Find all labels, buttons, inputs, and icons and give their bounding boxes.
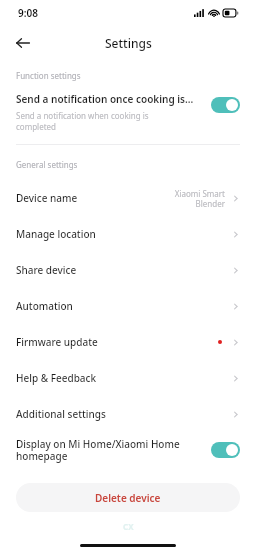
staticText: Device name [16,191,78,205]
staticText: Send a notification when cooking is comp… [16,110,149,132]
button[interactable]: Additional settings [0,396,256,432]
staticText: Settings [105,35,152,51]
button[interactable]: Toggle [211,442,240,458]
button[interactable]: Delete device [16,483,240,512]
button[interactable]: Toggle [211,97,240,113]
button[interactable]: Display on Mi Home/Xiaomi Home homepage [0,432,256,468]
staticText: 9:08 [18,6,38,20]
button[interactable]: Send a notification once cooking is... [0,81,256,132]
staticText: Additional settings [16,407,106,421]
button[interactable]: Back [10,30,36,56]
staticText: Firmware update [16,335,98,349]
button[interactable]: Share device [0,252,256,288]
staticText: Help & Feedback [16,371,97,385]
staticText: General settings [16,159,78,170]
button[interactable]: Automation [0,288,256,324]
staticText: Display on Mi Home/Xiaomi Home homepage [16,437,203,463]
staticText: CX [123,521,134,532]
button[interactable]: Help & Feedback [0,360,256,396]
staticText: Function settings [16,70,81,81]
button[interactable]: Firmware update [0,324,256,360]
staticText: Xiaomi Smart Blender [163,188,225,209]
staticText: Share device [16,263,77,277]
staticText: Manage location [16,227,96,241]
staticText: Delete device [95,491,161,505]
button[interactable]: Manage location [0,216,256,252]
staticText: Automation [16,299,73,313]
button[interactable]: Device name [0,180,256,216]
staticText: Send a notification once cooking is... [16,92,194,106]
